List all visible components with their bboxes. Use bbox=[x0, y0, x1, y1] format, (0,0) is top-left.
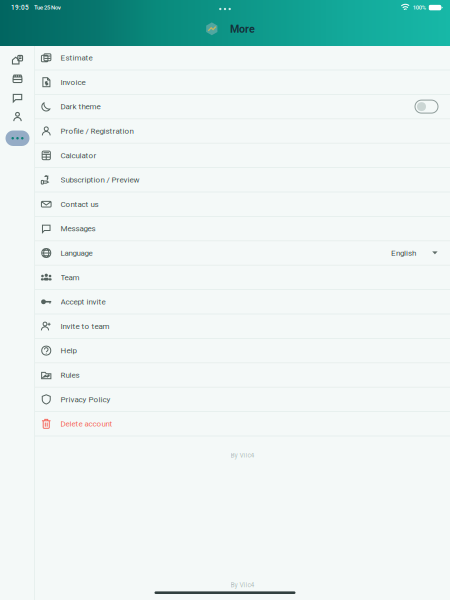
staticText: Invite to team bbox=[60, 321, 109, 331]
staticText: By Vilc4 bbox=[230, 581, 254, 589]
button[interactable]: Messages bbox=[35, 217, 450, 240]
staticText: Rules bbox=[60, 370, 79, 380]
button[interactable]: Privacy Policy bbox=[35, 388, 450, 411]
staticText: Subscription / Preview bbox=[60, 175, 139, 184]
staticText: Team bbox=[60, 273, 79, 282]
staticText: 100% bbox=[413, 4, 426, 11]
staticText: By Vilc4 bbox=[230, 451, 254, 459]
staticText: Delete account bbox=[60, 419, 112, 428]
button[interactable]: Home bbox=[0, 54, 34, 65]
button[interactable]: Subscription / Preview bbox=[35, 168, 450, 192]
staticText: Estimate bbox=[60, 53, 92, 62]
button[interactable]: Rules bbox=[35, 363, 450, 387]
button[interactable]: Delete account bbox=[35, 412, 450, 436]
button[interactable]: Invite to team bbox=[35, 314, 450, 338]
button[interactable]: Language bbox=[35, 241, 450, 265]
staticText: Accept invite bbox=[60, 297, 105, 306]
button[interactable]: Team bbox=[35, 266, 450, 289]
staticText: English bbox=[391, 248, 416, 258]
button[interactable]: Dark theme bbox=[35, 95, 450, 118]
staticText: Help bbox=[60, 346, 76, 355]
staticText: Privacy Policy bbox=[60, 395, 110, 404]
button[interactable]: Profile bbox=[0, 111, 34, 122]
button[interactable]: Store bbox=[0, 73, 34, 84]
button[interactable]: Accept invite bbox=[35, 290, 450, 314]
button[interactable]: Invoice bbox=[35, 70, 450, 94]
button[interactable]: Profile / Registration bbox=[35, 119, 450, 143]
button[interactable]: Estimate bbox=[35, 46, 450, 70]
staticText: Profile / Registration bbox=[60, 126, 133, 136]
button[interactable]: Calculator bbox=[35, 144, 450, 167]
staticText: Tue 25 Nov bbox=[34, 4, 61, 11]
staticText: 19:05 bbox=[11, 4, 29, 11]
button[interactable]: Contact us bbox=[35, 192, 450, 216]
staticText: Language bbox=[60, 248, 92, 258]
button[interactable]: Help bbox=[35, 339, 450, 362]
staticText: Calculator bbox=[60, 151, 96, 160]
staticText: More bbox=[230, 23, 255, 35]
staticText: Dark theme bbox=[60, 102, 100, 111]
button[interactable]: Messages bbox=[0, 92, 34, 103]
staticText: Contact us bbox=[60, 199, 98, 209]
staticText: Messages bbox=[60, 224, 95, 233]
button[interactable]: More bbox=[0, 130, 34, 146]
staticText: Invoice bbox=[60, 77, 85, 87]
